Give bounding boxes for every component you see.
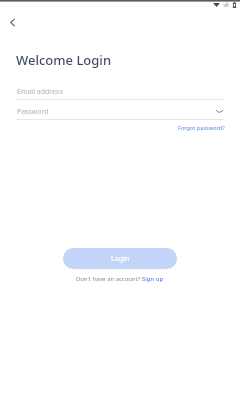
button[interactable]: Show password (213, 105, 225, 117)
button[interactable]: Email address (16, 84, 225, 100)
button[interactable]: Back (3, 13, 21, 31)
staticText: Don't have an account? (76, 275, 142, 283)
staticText: Forgot password? (178, 124, 225, 132)
button[interactable]: Forgot password? (178, 124, 225, 132)
staticText: Sign up (142, 275, 164, 283)
button[interactable]: Sign up (142, 275, 164, 283)
staticText: Login (111, 254, 130, 264)
button[interactable]: Password (16, 104, 209, 120)
staticText: Welcome Login (16, 51, 112, 69)
button[interactable]: Login (63, 248, 177, 269)
staticText: Password (17, 107, 49, 117)
staticText: Email address (17, 87, 63, 97)
